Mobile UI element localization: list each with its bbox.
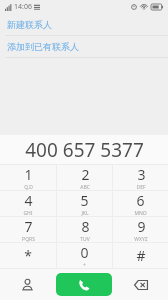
button[interactable]: 7 bbox=[0, 217, 56, 242]
staticText: + bbox=[83, 262, 86, 268]
button[interactable]: # bbox=[113, 243, 168, 268]
staticText: JKL bbox=[81, 210, 89, 216]
staticText: 5 bbox=[80, 191, 89, 210]
staticText: 3 bbox=[137, 165, 146, 184]
staticText: 新建联系人 bbox=[7, 19, 52, 30]
staticText: GHI bbox=[23, 210, 33, 216]
button[interactable]: * bbox=[0, 243, 56, 268]
button[interactable]: 3 bbox=[113, 165, 168, 190]
button[interactable]: 0 bbox=[57, 243, 112, 268]
staticText: 6 bbox=[136, 191, 145, 210]
button[interactable]: 新建联系人 bbox=[0, 14, 168, 35]
button[interactable]: Call bbox=[56, 273, 112, 296]
staticText: # bbox=[136, 246, 146, 265]
button[interactable]: 1 bbox=[0, 165, 56, 190]
staticText: TUV bbox=[80, 236, 90, 242]
staticText: Q.D bbox=[24, 184, 33, 190]
staticText: ABC bbox=[80, 184, 90, 190]
staticText: 1 bbox=[24, 165, 33, 184]
button[interactable]: 添加到已有联系人 bbox=[0, 36, 168, 57]
button[interactable]: 2 bbox=[57, 165, 112, 190]
staticText: 7 bbox=[24, 217, 33, 236]
staticText: * bbox=[24, 246, 32, 265]
button[interactable]: Delete bbox=[114, 269, 168, 300]
staticText: 400 657 5377 bbox=[25, 137, 144, 163]
staticText: WXYZ bbox=[134, 236, 148, 242]
staticText: 9 bbox=[137, 217, 146, 236]
staticText: PQRS bbox=[22, 236, 35, 242]
button[interactable]: 5 bbox=[57, 191, 112, 216]
button[interactable]: 4 bbox=[0, 191, 56, 216]
staticText: MNO bbox=[134, 210, 147, 216]
staticText: 14:06 bbox=[14, 2, 32, 12]
staticText: 添加到已有联系人 bbox=[7, 41, 79, 52]
button[interactable]: 6 bbox=[113, 191, 168, 216]
staticText: DEF bbox=[136, 184, 146, 190]
staticText: 8 bbox=[81, 217, 90, 236]
staticText: 0 bbox=[80, 243, 89, 262]
staticText: 2 bbox=[81, 165, 90, 184]
button[interactable]: 8 bbox=[57, 217, 112, 242]
button[interactable]: Contacts bbox=[0, 269, 54, 300]
button[interactable]: 9 bbox=[113, 217, 168, 242]
staticText: 4 bbox=[24, 191, 33, 210]
